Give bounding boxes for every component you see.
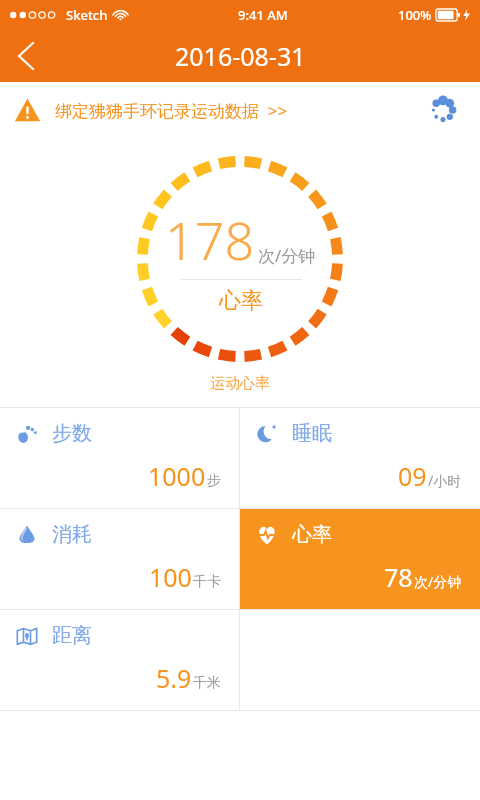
staticText: 睡眠: [292, 421, 332, 446]
staticText: 次/分钟: [258, 244, 316, 267]
staticText: 步数: [52, 421, 92, 446]
staticText: 千米: [193, 674, 221, 692]
button[interactable]: 睡眠: [240, 408, 480, 508]
staticText: 78: [384, 560, 413, 594]
button[interactable]: Back: [0, 30, 52, 82]
button[interactable]: 绑定狒狒手环记录运动数据 >>: [0, 82, 480, 138]
button[interactable]: 心率: [240, 509, 480, 609]
button[interactable]: 消耗: [0, 509, 239, 609]
staticText: 心率: [292, 522, 332, 547]
staticText: 千卡: [193, 573, 221, 591]
button[interactable]: 步数: [0, 408, 239, 508]
staticText: 次/分钟: [414, 572, 462, 591]
staticText: 消耗: [52, 522, 92, 547]
staticText: 距离: [52, 623, 92, 648]
button[interactable]: 距离: [0, 610, 239, 710]
staticText: /小时: [428, 471, 462, 490]
staticText: Sketch: [66, 6, 108, 24]
staticText: 5.9: [156, 661, 192, 695]
staticText: 09: [398, 459, 427, 493]
staticText: 178: [165, 204, 255, 275]
staticText: 绑定狒狒手环记录运动数据 >>: [55, 99, 288, 122]
staticText: 100: [149, 560, 192, 594]
staticText: 运动心率: [0, 374, 480, 393]
staticText: 心率: [219, 287, 263, 315]
staticText: 步: [207, 472, 221, 490]
staticText: 9:41 AM: [238, 6, 288, 24]
staticText: 1000: [148, 459, 206, 493]
staticText: 100%: [398, 6, 432, 24]
staticText: 2016-08-31: [175, 39, 306, 73]
